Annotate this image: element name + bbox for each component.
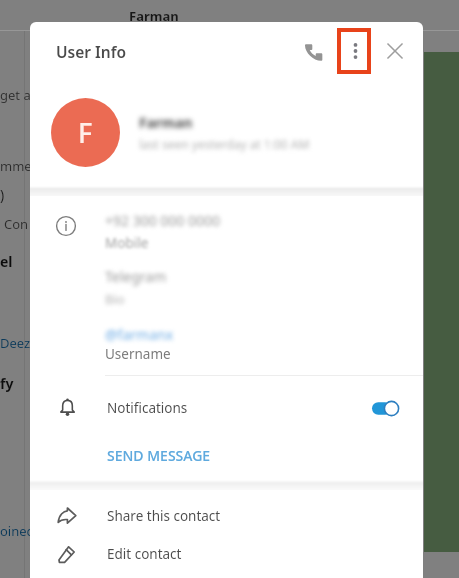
staticText: fy (0, 374, 14, 393)
staticText: get a (0, 86, 31, 104)
button[interactable] (30, 258, 423, 314)
button[interactable] (30, 82, 423, 188)
staticText: Username (105, 345, 171, 363)
staticText: User Info (56, 41, 126, 62)
button[interactable]: Share this contact (30, 497, 423, 535)
staticText: last seen yesterday at 1:00 AM (139, 136, 310, 152)
staticText: +92 300 000 0000 (105, 211, 221, 230)
button[interactable]: User Info (30, 22, 423, 81)
staticText: F (78, 114, 93, 151)
staticText: @farmanx (105, 325, 174, 344)
button[interactable]: Edit contact (30, 535, 423, 573)
staticText: el (0, 252, 13, 271)
button[interactable]: SEND MESSAGE (30, 434, 423, 476)
staticText: Mobile (105, 234, 149, 252)
staticText: oined (0, 522, 35, 540)
button[interactable]: Notifications toggle (372, 398, 401, 419)
button[interactable]: Call (293, 32, 333, 72)
staticText: Share this contact (107, 507, 221, 525)
button[interactable]: Notifications (30, 383, 423, 433)
staticText: mme (0, 157, 32, 175)
staticText: Deeze (0, 334, 38, 352)
staticText: Notifications (107, 399, 188, 417)
staticText: Telegram (105, 267, 167, 286)
button[interactable] (30, 200, 423, 256)
staticText: ) (0, 185, 5, 204)
staticText: Farman (139, 113, 193, 132)
staticText: SEND MESSAGE (107, 446, 211, 465)
staticText: Bio (105, 290, 125, 308)
button[interactable]: Close (375, 31, 415, 71)
staticText: Con (4, 215, 29, 233)
staticText: Farman (129, 7, 179, 25)
staticText: Edit contact (107, 545, 182, 563)
button[interactable]: More options (335, 31, 375, 71)
button[interactable] (30, 316, 423, 372)
